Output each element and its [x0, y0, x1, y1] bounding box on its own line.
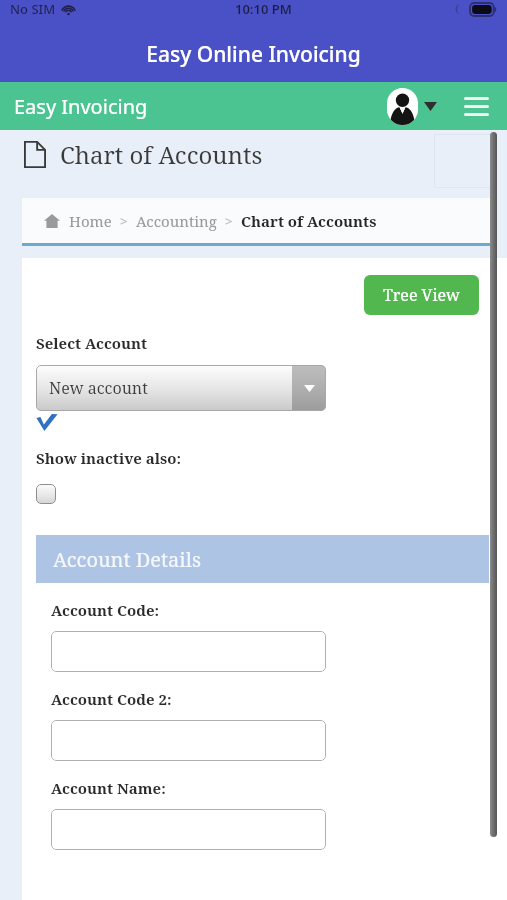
- staticText: Account Code:: [51, 600, 160, 620]
- staticText: 10:10 PM: [235, 0, 292, 18]
- button[interactable]: Home: [69, 211, 112, 231]
- staticText: >: [120, 212, 128, 230]
- staticText: Show inactive also:: [36, 448, 182, 468]
- staticText: No SIM: [10, 0, 56, 18]
- button[interactable]: [51, 809, 326, 850]
- button[interactable]: Show inactive also: [36, 484, 56, 504]
- staticText: Easy Online Invoicing: [146, 40, 361, 69]
- button[interactable]: Accounting: [136, 211, 217, 231]
- button[interactable]: Account menu: [385, 88, 439, 125]
- button[interactable]: Tree View: [364, 275, 479, 315]
- button[interactable]: [51, 631, 326, 672]
- staticText: Select Account: [36, 333, 148, 353]
- button[interactable]: Menu: [459, 89, 493, 123]
- staticText: New account: [49, 377, 148, 399]
- staticText: Tree View: [383, 284, 460, 306]
- button[interactable]: Action: [434, 134, 492, 188]
- staticText: >: [225, 212, 233, 230]
- staticText: Account Name:: [51, 778, 166, 798]
- staticText: Easy Invoicing: [14, 93, 148, 120]
- staticText: Account Details: [53, 546, 201, 573]
- button[interactable]: New account: [36, 365, 326, 411]
- staticText: Account Code 2:: [51, 689, 172, 709]
- staticText: Chart of Accounts: [60, 138, 263, 171]
- staticText: Chart of Accounts: [241, 211, 377, 231]
- button[interactable]: [51, 720, 326, 761]
